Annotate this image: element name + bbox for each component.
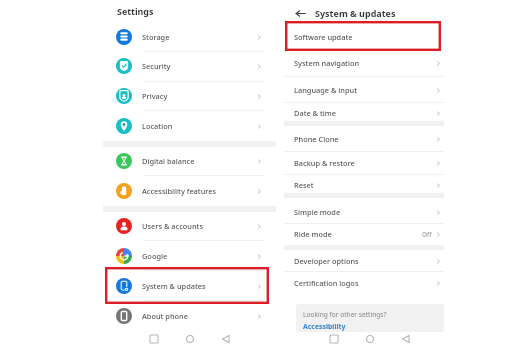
button[interactable]: Digital balance (103, 146, 276, 176)
staticText: Date & time (294, 108, 337, 118)
button[interactable]: Storage (103, 22, 276, 52)
staticText: About phone (142, 311, 188, 321)
button[interactable]: Back (219, 332, 232, 345)
button[interactable]: Reset (284, 173, 444, 197)
button[interactable]: Accessibility features (103, 176, 276, 206)
button[interactable]: Recents (147, 332, 160, 345)
button[interactable]: Home (363, 332, 376, 345)
button[interactable]: Certification logos (284, 271, 444, 295)
staticText: Security (142, 61, 171, 71)
button[interactable]: Home (183, 332, 196, 345)
staticText: Simple mode (294, 207, 341, 217)
button[interactable]: Google (103, 241, 276, 271)
button[interactable]: Phone Clone (284, 127, 444, 151)
staticText: System & updates (315, 7, 396, 19)
button[interactable]: Users & accounts (103, 211, 276, 241)
button[interactable]: About phone (103, 301, 276, 331)
staticText: Digital balance (142, 156, 195, 166)
staticText: Developer options (294, 256, 359, 266)
button[interactable]: Developer options (284, 249, 444, 273)
button[interactable]: Language & input (284, 78, 444, 102)
button[interactable]: System navigation (284, 51, 444, 75)
staticText: System & updates (142, 281, 206, 291)
staticText: Language & input (294, 85, 358, 95)
staticText: Phone Clone (294, 134, 339, 144)
button[interactable]: Simple mode (284, 200, 444, 224)
staticText: Google (142, 251, 168, 261)
button[interactable]: Software update (284, 25, 444, 49)
staticText: Settings (117, 5, 154, 17)
button[interactable]: Location (103, 111, 276, 141)
staticText: System navigation (294, 58, 360, 68)
staticText: Backup & restore (294, 158, 355, 168)
staticText: Users & accounts (142, 221, 203, 231)
staticText: Privacy (142, 91, 168, 101)
staticText: Accessibility (303, 322, 346, 331)
button[interactable]: Backup & restore (284, 151, 444, 175)
button[interactable]: Back (399, 332, 412, 345)
button[interactable]: Looking for other settings? (296, 304, 444, 332)
staticText: Storage (142, 32, 170, 42)
staticText: Reset (294, 180, 314, 190)
staticText: Certification logos (294, 278, 359, 288)
staticText: Software update (294, 32, 353, 42)
button[interactable]: Ride mode (284, 222, 444, 246)
button[interactable]: Back (294, 7, 307, 20)
staticText: Accessibility features (142, 186, 217, 196)
button[interactable]: Privacy (103, 81, 276, 111)
button[interactable]: Security (103, 51, 276, 81)
button[interactable]: Date & time (284, 101, 444, 125)
staticText: Ride mode (294, 229, 332, 239)
staticText: Looking for other settings? (303, 310, 387, 319)
staticText: Location (142, 121, 173, 131)
staticText: Off (422, 230, 432, 239)
button[interactable]: Recents (327, 332, 340, 345)
button[interactable]: System & updates (103, 271, 276, 301)
